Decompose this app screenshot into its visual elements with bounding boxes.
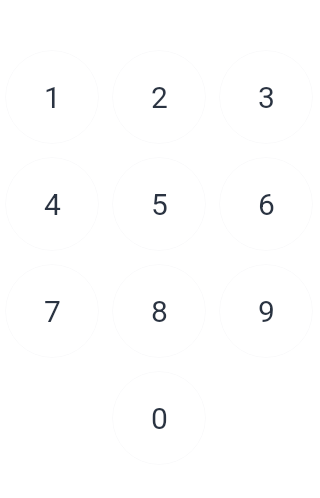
staticText: 8 [151,294,168,329]
staticText: 9 [258,294,275,329]
staticText: 3 [258,80,275,115]
button[interactable]: 5 [112,157,206,251]
staticText: 1 [44,80,61,115]
button[interactable]: 9 [219,264,313,358]
button[interactable]: 4 [5,157,99,251]
button[interactable]: 7 [5,264,99,358]
staticText: 4 [44,187,61,222]
staticText: 5 [151,187,168,222]
button[interactable]: 2 [112,50,206,144]
button[interactable]: 8 [112,264,206,358]
button[interactable]: 1 [5,50,99,144]
button[interactable]: 6 [219,157,313,251]
button[interactable]: 0 [112,371,206,465]
staticText: 6 [258,187,275,222]
button[interactable]: 3 [219,50,313,144]
staticText: 2 [151,80,168,115]
staticText: 0 [151,401,168,436]
staticText: 7 [44,294,61,329]
